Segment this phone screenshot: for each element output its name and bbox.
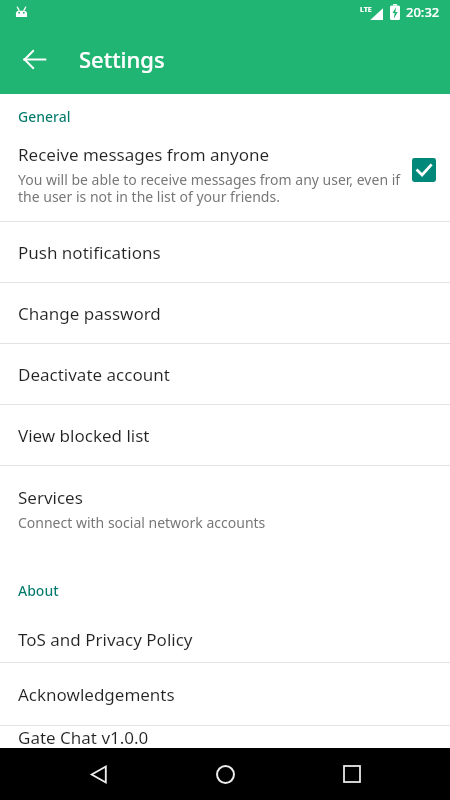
button[interactable]: Back [76, 752, 120, 796]
staticText: Change password [18, 302, 161, 325]
button[interactable]: Recent apps [330, 752, 374, 796]
button[interactable]: Deactivate account [0, 344, 450, 404]
button[interactable]: Home [203, 752, 247, 796]
staticText: About [18, 581, 59, 600]
staticText: Acknowledgements [18, 683, 175, 706]
staticText: 20:32 [406, 3, 440, 21]
button[interactable]: Gate Chat v1.0.0 [0, 726, 450, 748]
button[interactable]: Acknowledgements [0, 663, 450, 725]
staticText: View blocked list [18, 424, 150, 447]
staticText: General [18, 107, 71, 126]
staticText: Gate Chat v1.0.0 [18, 726, 149, 748]
staticText: Push notifications [18, 241, 161, 264]
button[interactable]: Services [0, 466, 450, 550]
staticText: Receive messages from anyone [18, 143, 270, 166]
button[interactable]: View blocked list [0, 405, 450, 465]
button[interactable]: Receive messages from anyone, checked [412, 158, 436, 182]
button[interactable]: Push notifications [0, 222, 450, 282]
staticText: ToS and Privacy Policy [18, 628, 193, 651]
button[interactable]: Navigate up [10, 35, 58, 83]
button[interactable]: Change password [0, 283, 450, 343]
staticText: LTE [360, 5, 372, 15]
button[interactable]: ToS and Privacy Policy [0, 617, 450, 662]
staticText: You will be able to receive messages fro… [18, 170, 404, 206]
staticText: Services [18, 486, 83, 509]
staticText: Connect with social network accounts [18, 513, 266, 532]
staticText: Settings [79, 44, 165, 74]
staticText: Deactivate account [18, 363, 170, 386]
button[interactable]: Receive messages from anyone [0, 143, 450, 221]
